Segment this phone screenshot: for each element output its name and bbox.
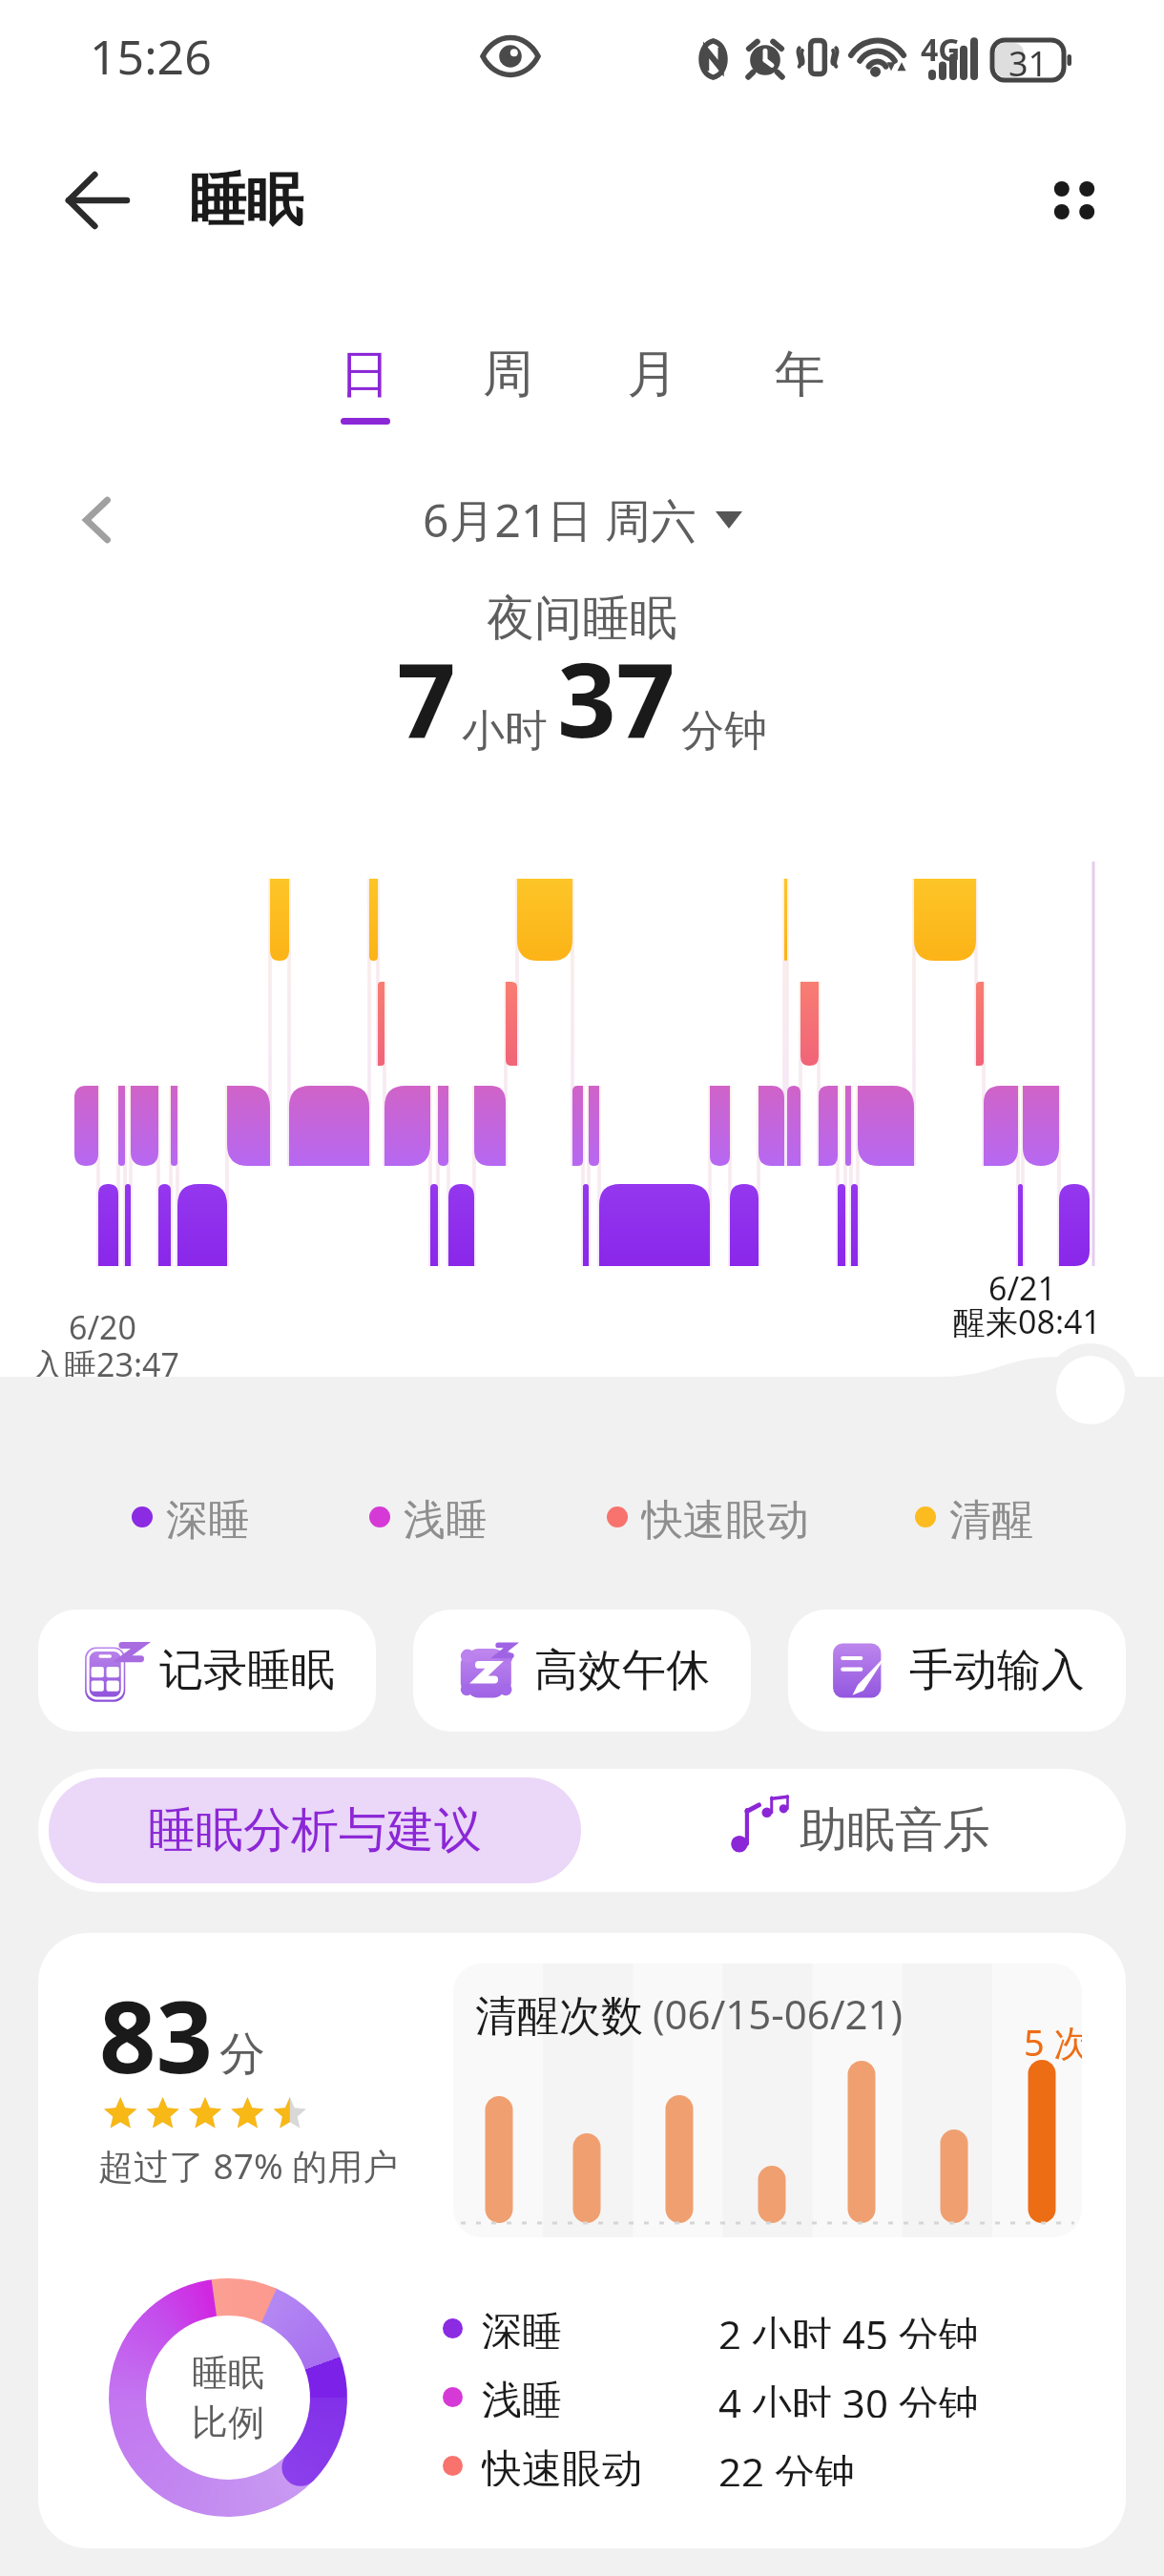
button[interactable]: 周: [441, 343, 574, 455]
staticText: 22 分钟: [718, 2444, 855, 2486]
button[interactable]: 快速眼动: [607, 1494, 809, 1540]
staticText: 7: [397, 628, 456, 768]
staticText: 清醒次数: [475, 1990, 643, 2043]
button[interactable]: 助眠音乐: [592, 1769, 1126, 1892]
button[interactable]: 睡眠分析与建议: [49, 1777, 581, 1883]
staticText: 比例: [192, 2399, 264, 2445]
staticText: 入睡23:47: [31, 1342, 179, 1386]
staticText: 2 小时 45 分钟: [718, 2307, 979, 2349]
button[interactable]: 月: [585, 343, 718, 455]
staticText: 浅睡: [404, 1494, 488, 1540]
staticText: 31: [1008, 40, 1049, 80]
button[interactable]: 日: [298, 343, 431, 455]
staticText: 分: [219, 2025, 265, 2083]
staticText: 6月21日 周六: [423, 488, 696, 551]
button[interactable]: 深睡: [132, 1494, 250, 1540]
staticText: 日: [340, 343, 390, 406]
staticText: 浅睡: [482, 2376, 562, 2418]
staticText: 超过了 87% 的用户: [98, 2141, 399, 2190]
staticText: 手动输入: [909, 1643, 1085, 1698]
staticText: 分钟: [681, 704, 767, 758]
button[interactable]: 6月21日 周六: [423, 488, 742, 551]
staticText: 快速眼动: [641, 1494, 809, 1540]
staticText: 15:26: [90, 24, 212, 89]
staticText: 睡眠: [192, 2350, 264, 2396]
staticText: 深睡: [166, 1494, 250, 1540]
staticText: 年: [775, 343, 825, 406]
staticText: 周: [483, 343, 533, 406]
staticText: (06/15-06/21): [653, 1986, 904, 2041]
staticText: 4G: [921, 29, 961, 71]
button[interactable]: Expand sleep details: [1056, 1356, 1125, 1424]
staticText: 夜间睡眠: [487, 589, 677, 649]
staticText: 小时: [462, 704, 548, 758]
button[interactable]: 年: [733, 343, 866, 455]
staticText: 醒来08:41: [953, 1299, 1101, 1343]
staticText: 高效午休: [534, 1643, 710, 1698]
staticText: 快速眼动: [482, 2444, 642, 2486]
staticText: 37: [557, 628, 676, 768]
staticText: 6/21: [988, 1266, 1056, 1310]
staticText: 5 次: [1024, 2017, 1082, 2067]
button[interactable]: 高效午休: [413, 1610, 751, 1732]
button[interactable]: 记录睡眠: [38, 1610, 376, 1732]
staticText: 睡眠分析与建议: [148, 1800, 482, 1860]
button[interactable]: More options: [1027, 153, 1122, 248]
button[interactable]: Back: [50, 153, 145, 248]
staticText: 深睡: [482, 2307, 562, 2349]
staticText: 4 小时 30 分钟: [718, 2376, 979, 2418]
button[interactable]: 手动输入: [788, 1610, 1126, 1732]
staticText: 6/20: [69, 1305, 136, 1349]
staticText: 83: [99, 1967, 213, 2103]
button[interactable]: 83: [38, 1933, 1126, 2548]
button[interactable]: Previous day: [59, 482, 135, 558]
staticText: 记录睡眠: [159, 1643, 335, 1698]
staticText: 清醒: [949, 1494, 1033, 1540]
staticText: 助眠音乐: [800, 1800, 990, 1860]
staticText: 月: [627, 343, 677, 406]
staticText: 睡眠: [189, 164, 303, 237]
button[interactable]: 清醒: [915, 1494, 1033, 1540]
button[interactable]: 浅睡: [369, 1494, 488, 1540]
